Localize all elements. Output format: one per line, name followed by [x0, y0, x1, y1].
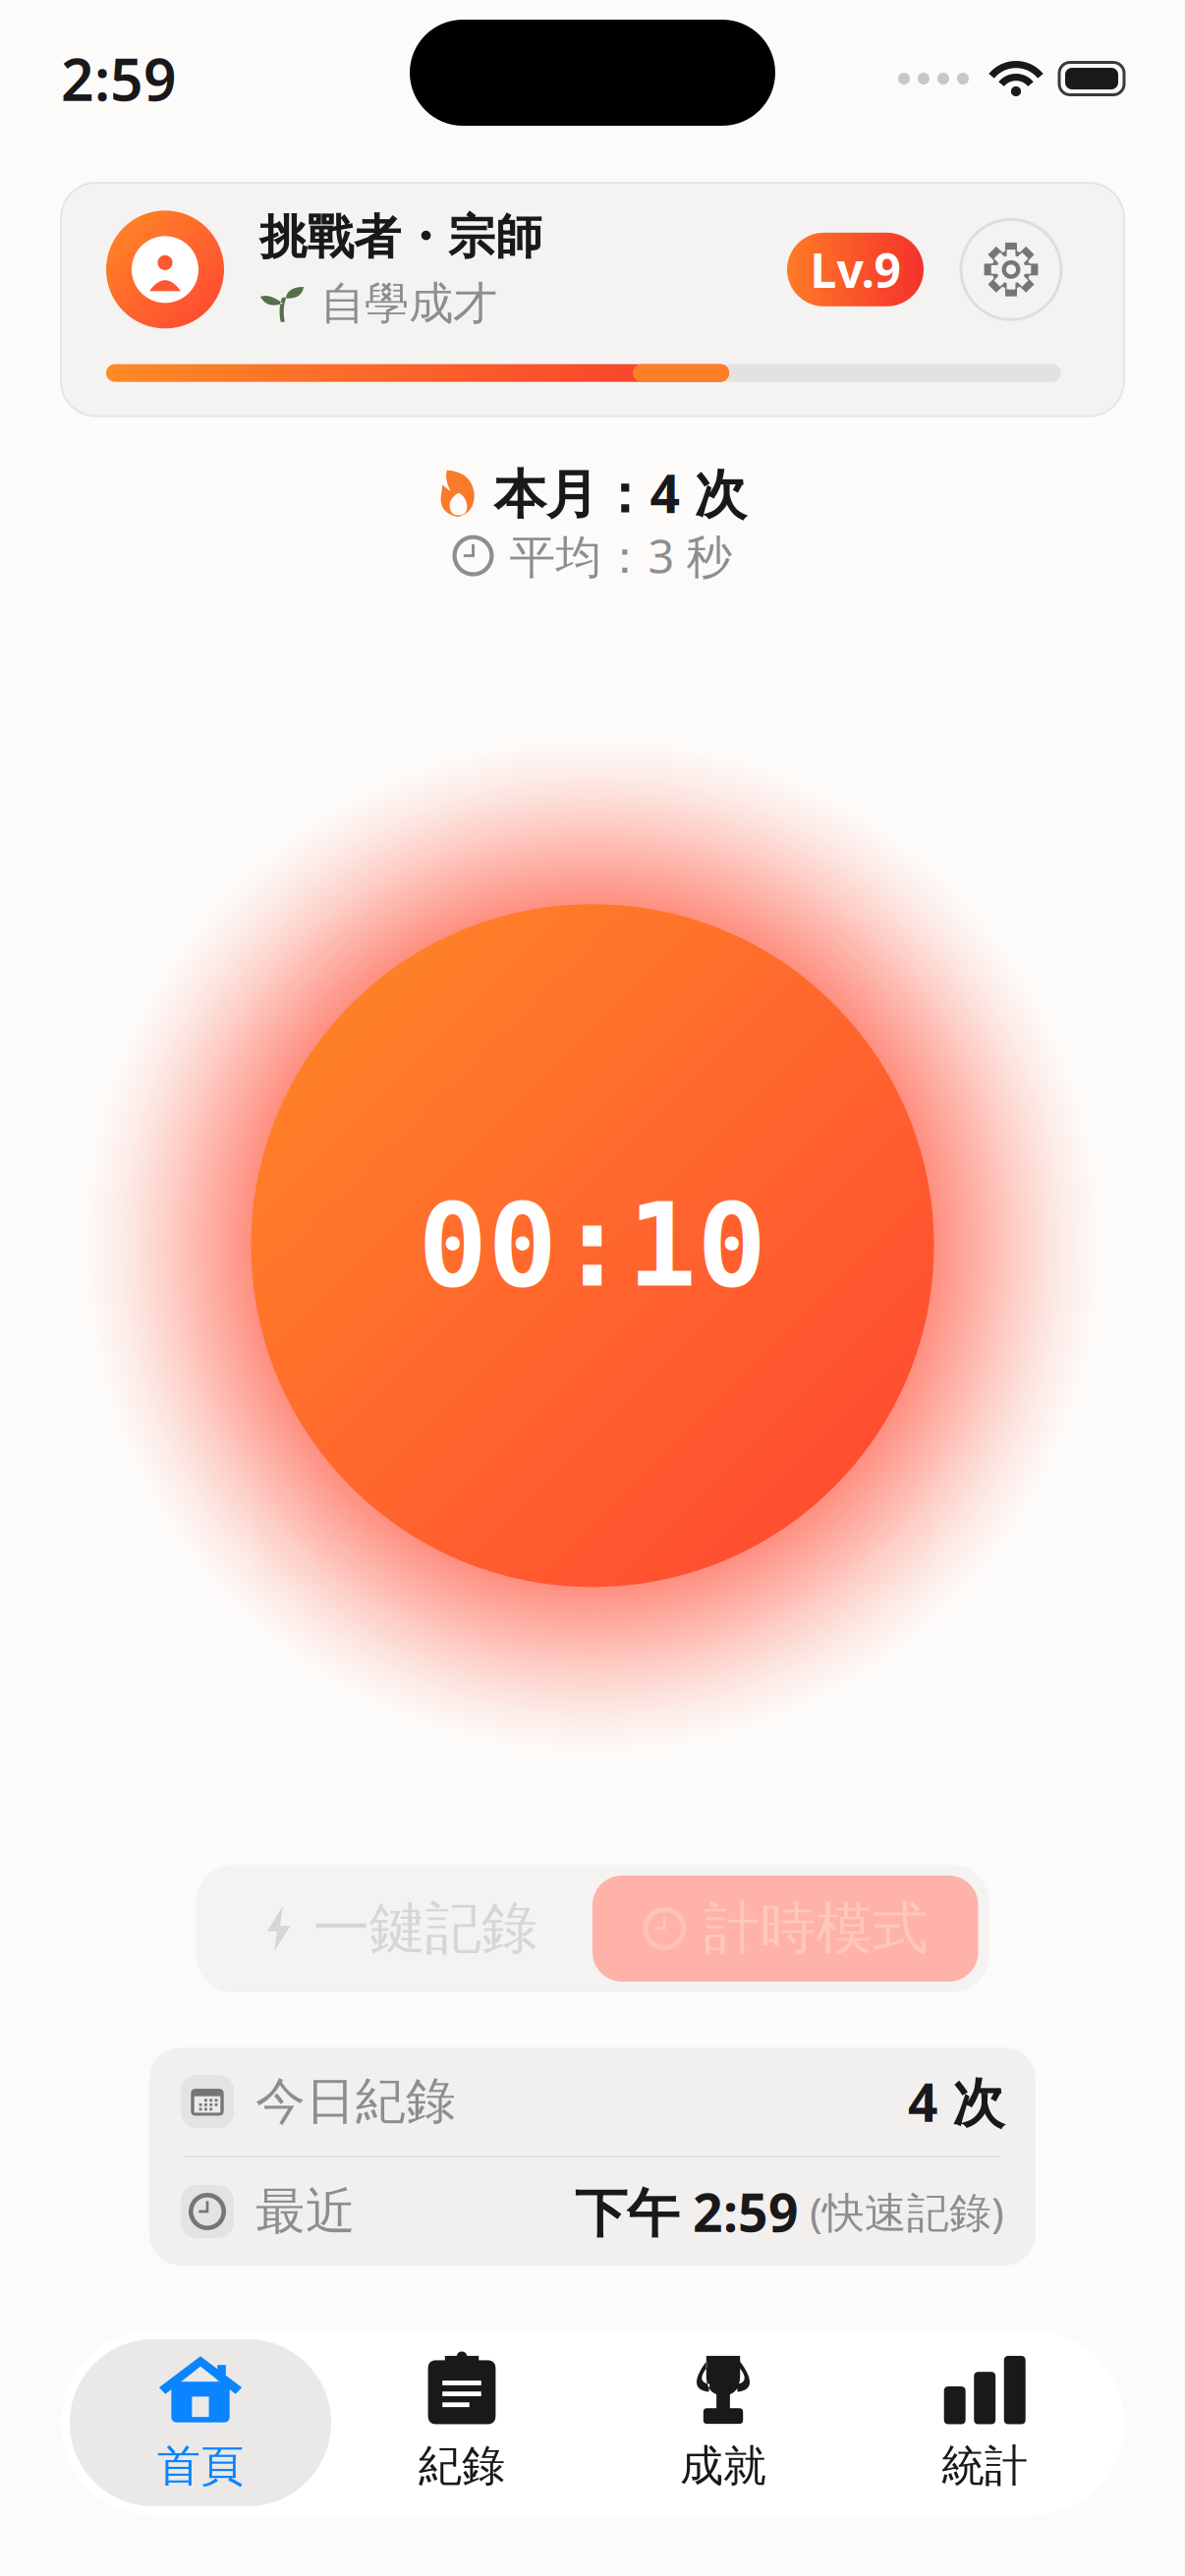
staticText: 2:59: [61, 40, 177, 117]
staticText: 00:10: [418, 1180, 767, 1311]
button[interactable]: 紀錄: [331, 2339, 592, 2506]
staticText: 成就: [680, 2439, 766, 2492]
staticText: 計時模式: [704, 1894, 928, 1963]
staticText: 4 次: [908, 2067, 1004, 2136]
staticText: 統計: [941, 2439, 1028, 2492]
staticText: 最近: [255, 2181, 356, 2242]
staticText: 今日紀錄: [255, 2071, 456, 2132]
button[interactable]: 一鍵記錄: [207, 1876, 592, 1982]
button[interactable]: 首頁: [70, 2339, 331, 2506]
button[interactable]: 計時模式: [592, 1876, 978, 1982]
staticText: (快速記錄): [799, 2184, 1004, 2239]
staticText: 本月：4 次: [494, 458, 746, 528]
staticText: 挑戰者・宗師: [259, 208, 542, 266]
staticText: 平均：3 秒: [509, 525, 733, 586]
staticText: Lv.9: [810, 238, 901, 301]
button[interactable]: 成就: [592, 2339, 854, 2506]
staticText: 下午 2:59: [575, 2177, 799, 2246]
button[interactable]: 統計: [854, 2339, 1115, 2506]
button[interactable]: Settings: [961, 219, 1061, 320]
staticText: 首頁: [157, 2439, 244, 2492]
staticText: 一鍵記錄: [313, 1894, 537, 1963]
staticText: 紀錄: [419, 2439, 505, 2492]
staticText: 自學成才: [320, 276, 497, 331]
